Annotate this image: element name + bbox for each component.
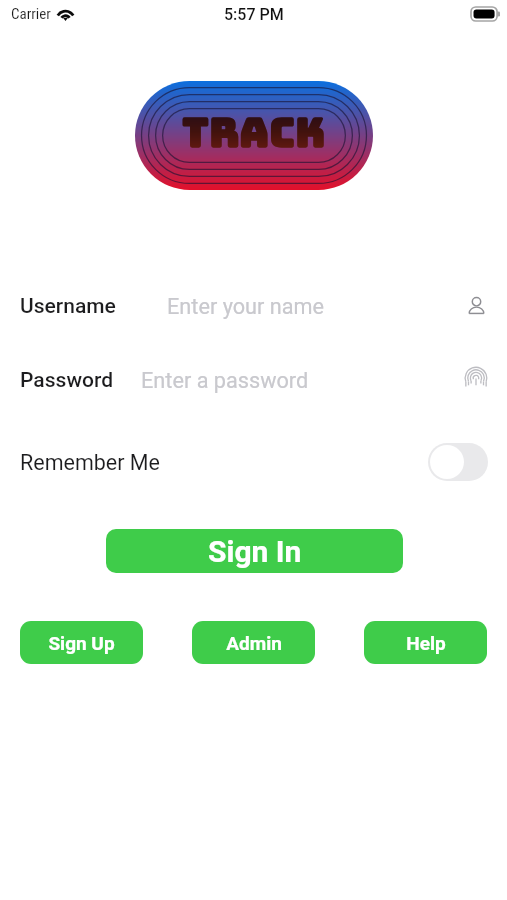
staticText: Carrier — [11, 5, 51, 23]
button[interactable]: Sign Up — [20, 621, 143, 664]
staticText: Password — [20, 368, 114, 393]
staticText: Help — [406, 632, 446, 654]
staticText: Sign In — [208, 534, 302, 569]
button[interactable]: Help — [364, 621, 487, 664]
button[interactable]: Admin — [192, 621, 315, 664]
staticText: Enter your name — [167, 294, 325, 319]
staticText: TRACK — [182, 105, 326, 159]
staticText: 5:57 PM — [224, 5, 284, 24]
staticText: Username — [20, 294, 116, 319]
staticText: Admin — [226, 632, 282, 654]
staticText: Enter a password — [141, 368, 309, 393]
button[interactable]: Username field — [461, 291, 491, 321]
staticText: Sign Up — [48, 632, 115, 654]
staticText: Remember Me — [20, 450, 161, 475]
button[interactable]: Remember me toggle — [428, 443, 488, 481]
button[interactable]: Use fingerprint — [461, 365, 491, 395]
button[interactable]: Sign In — [106, 529, 403, 573]
